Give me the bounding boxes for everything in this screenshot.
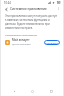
staticText: Эти приложения могут получать доступ к в… [5,14,59,30]
staticText: 10:24 [4,1,11,5]
button[interactable]: More options [56,6,61,11]
button[interactable]: Recent apps [45,87,57,96]
button[interactable]: Back [8,87,20,96]
staticText: Разрешённые приложения [5,33,38,36]
button[interactable]: Отключить [44,40,60,45]
staticText: Системное приложение [10,7,56,11]
button[interactable]: Home [26,87,38,96]
button[interactable]: Мой аккаунт [1,37,63,47]
button[interactable]: Back [3,6,9,12]
staticText: Мой аккаунт [12,38,30,42]
staticText: Отключить [45,41,59,44]
staticText: Доступ разрешён [12,43,31,46]
